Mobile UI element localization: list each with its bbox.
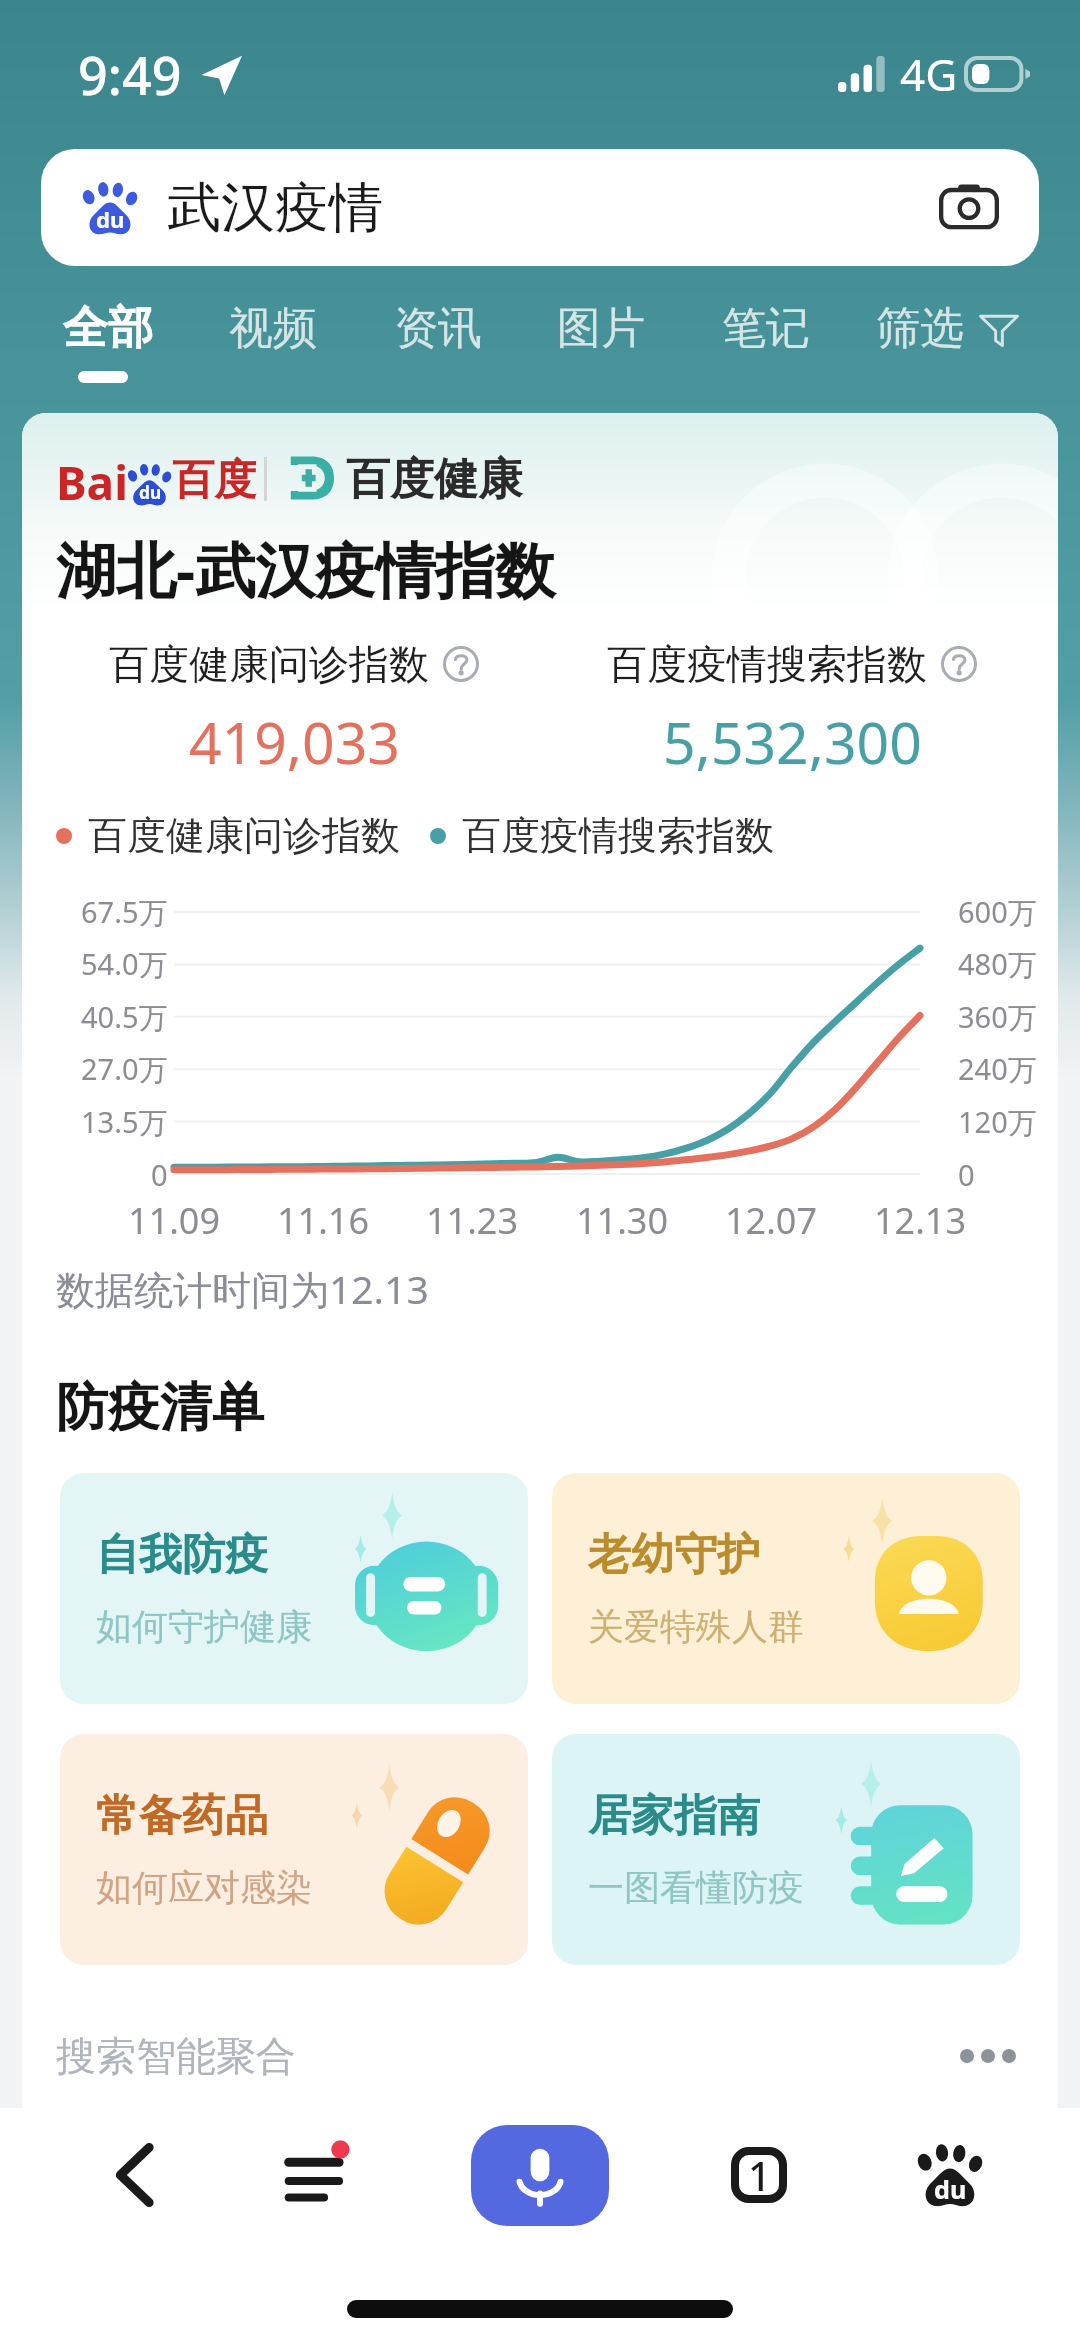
staticText: 筛选 [876, 301, 964, 356]
button[interactable]: Tabs [699, 2115, 819, 2235]
staticText: 笔记 [722, 301, 810, 356]
button[interactable]: 资讯 [376, 290, 500, 366]
staticText: 百度健康问诊指数 [109, 639, 429, 689]
staticText: 数据统计时间为12.13 [56, 1262, 429, 1315]
staticText: Bai [56, 451, 128, 507]
staticText: du [934, 2172, 967, 2206]
staticText: 居家指南 [588, 1789, 760, 1843]
button[interactable]: 居家指南 [552, 1734, 1020, 1965]
staticText: 40.5万 [81, 997, 168, 1037]
staticText: 4G [900, 44, 958, 104]
staticText: 11.09 [128, 1196, 221, 1245]
staticText: 67.5万 [81, 892, 168, 932]
staticText: 54.0万 [81, 944, 168, 984]
button[interactable]: 筛选 [876, 290, 1020, 366]
button[interactable]: 视频 [211, 290, 335, 366]
staticText: 百度 [172, 454, 256, 507]
staticText: 自我防疫 [96, 1528, 268, 1582]
staticText: 11.23 [426, 1196, 519, 1245]
staticText: 百度健康问诊指数 [88, 811, 400, 860]
staticText: du [139, 481, 162, 505]
staticText: 百度疫情搜索指数 [462, 811, 774, 860]
staticText: 百度疫情搜索指数 [607, 639, 927, 689]
button[interactable]: 搜索智能聚合 [22, 2003, 1058, 2109]
staticText: 资讯 [394, 301, 482, 356]
button[interactable]: Voice search [471, 2125, 609, 2226]
staticText: 120万 [958, 1102, 1037, 1142]
staticText: 湖北-武汉疫情指数 [56, 528, 556, 610]
staticText: 常备药品 [96, 1789, 268, 1843]
staticText: 5,532,300 [663, 703, 922, 781]
staticText: 480万 [958, 944, 1037, 984]
button[interactable]: Camera search [937, 176, 1001, 240]
button[interactable]: 笔记 [704, 290, 828, 366]
staticText: 武汉疫情 [167, 174, 383, 242]
button[interactable]: du [41, 149, 1039, 266]
staticText: du [96, 204, 125, 234]
staticText: 12.07 [725, 1196, 818, 1245]
staticText: 360万 [958, 997, 1037, 1037]
button[interactable]: Menu [260, 2115, 380, 2235]
staticText: 9:49 [78, 39, 182, 110]
staticText: 0 [151, 1155, 168, 1194]
staticText: 11.16 [277, 1196, 370, 1245]
button[interactable]: 图片 [539, 290, 663, 366]
staticText: 如何守护健康 [96, 1604, 312, 1649]
staticText: 老幼守护 [588, 1528, 760, 1582]
button[interactable]: 常备药品 [60, 1734, 528, 1965]
staticText: 13.5万 [81, 1102, 168, 1142]
button[interactable]: Baidu home [890, 2115, 1010, 2235]
staticText: 1 [748, 2148, 771, 2202]
button[interactable]: 自我防疫 [60, 1473, 528, 1704]
staticText: 11.30 [576, 1196, 669, 1245]
staticText: 关爱特殊人群 [588, 1604, 804, 1649]
staticText: 600万 [958, 892, 1037, 932]
button[interactable]: 老幼守护 [552, 1473, 1020, 1704]
staticText: 防疫清单 [56, 1375, 264, 1441]
staticText: 一图看懂防疫 [588, 1865, 804, 1910]
staticText: 419,033 [189, 703, 400, 781]
button[interactable]: Back [74, 2115, 194, 2235]
staticText: 搜索智能聚合 [56, 2031, 296, 2081]
staticText: 视频 [229, 301, 317, 356]
staticText: 0 [958, 1155, 975, 1194]
staticText: 全部 [63, 300, 153, 357]
staticText: 27.0万 [81, 1049, 168, 1089]
staticText: 240万 [958, 1049, 1037, 1089]
staticText: 如何应对感染 [96, 1865, 312, 1910]
staticText: 图片 [557, 301, 645, 356]
button[interactable]: 全部 [46, 290, 170, 366]
staticText: 12.13 [874, 1196, 967, 1245]
staticText: 百度健康 [346, 452, 522, 507]
